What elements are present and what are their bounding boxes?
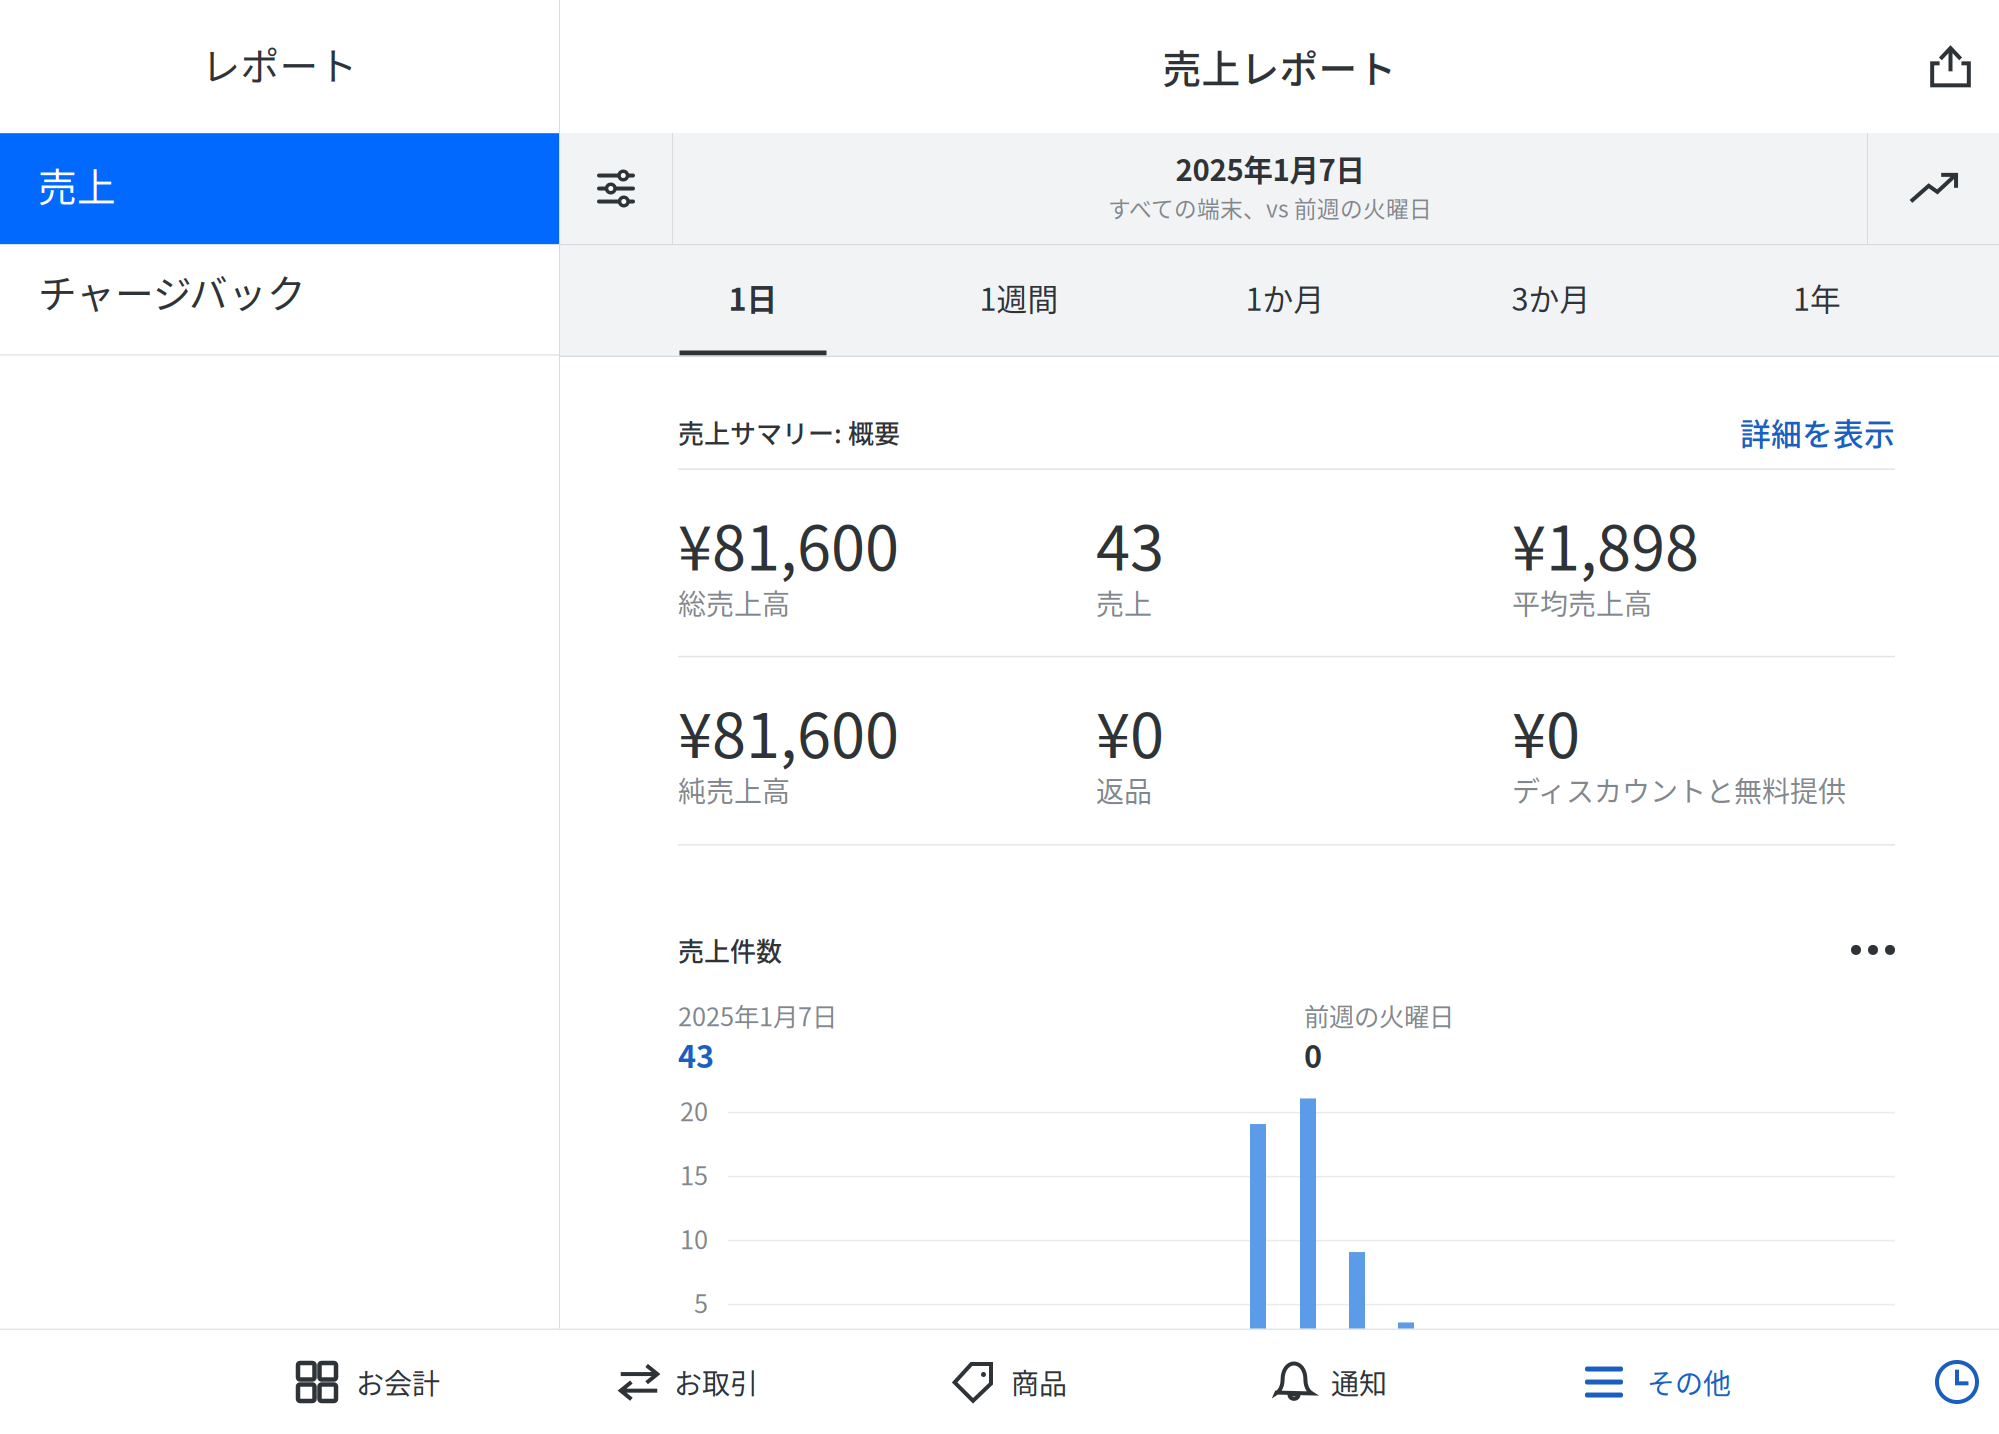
staticText: ¥0: [1096, 687, 1164, 776]
staticText: 平均売上高: [1512, 582, 1652, 623]
staticText: 3か月: [1511, 275, 1590, 319]
button[interactable]: その他: [1583, 1330, 1863, 1434]
staticText: 5: [694, 1284, 708, 1321]
staticText: 0: [1304, 1032, 1322, 1077]
staticText: 詳細を表示: [1740, 410, 1895, 454]
staticText: 15: [680, 1156, 708, 1193]
staticText: ディスカウントと無料提供: [1512, 770, 1846, 810]
staticText: 1週間: [979, 275, 1058, 319]
button[interactable]: フィルタ: [560, 133, 672, 244]
staticText: 43: [1096, 499, 1164, 588]
button[interactable]: 通知: [1273, 1330, 1583, 1434]
staticText: 売上サマリー: 概要: [678, 413, 900, 451]
button[interactable]: 商品: [952, 1330, 1273, 1434]
button[interactable]: その他のオプション: [1851, 943, 1895, 957]
button[interactable]: お会計: [296, 1330, 618, 1434]
staticText: 43: [678, 1032, 714, 1077]
button[interactable]: グラフを表示: [1868, 133, 1999, 244]
staticText: ¥0: [1512, 687, 1580, 776]
staticText: 商品: [1011, 1362, 1067, 1402]
staticText: 返品: [1096, 770, 1152, 810]
staticText: 前週の火曜日: [1304, 997, 1454, 1033]
staticText: 売上: [38, 157, 116, 213]
staticText: 10: [680, 1220, 708, 1257]
staticText: 売上: [1096, 582, 1152, 623]
staticText: レポート: [201, 36, 357, 92]
staticText: ¥81,600: [678, 687, 899, 776]
staticText: お会計: [356, 1362, 440, 1402]
staticText: 1日: [728, 275, 777, 319]
staticText: チャージバック: [38, 263, 306, 319]
staticText: お取引: [674, 1362, 758, 1402]
staticText: その他: [1647, 1362, 1731, 1402]
button[interactable]: お取引: [618, 1330, 952, 1434]
staticText: 2025年1月7日: [1175, 147, 1364, 189]
staticText: 20: [680, 1092, 708, 1129]
staticText: 1か月: [1245, 275, 1324, 319]
staticText: 総売上高: [678, 582, 790, 623]
button[interactable]: 共有: [1902, 0, 1999, 133]
staticText: 通知: [1331, 1362, 1387, 1402]
button[interactable]: 3か月: [1418, 245, 1684, 355]
staticText: 売上件数: [678, 931, 782, 969]
button[interactable]: 1日: [620, 245, 886, 355]
staticText: ¥81,600: [678, 499, 899, 588]
staticText: 2025年1月7日: [678, 997, 837, 1033]
button[interactable]: 1週間: [886, 245, 1152, 355]
button[interactable]: 1か月: [1152, 245, 1418, 355]
button[interactable]: チャージバック: [0, 244, 559, 354]
staticText: すべての端末、vs 前週の火曜日: [1108, 191, 1432, 224]
staticText: 売上レポート: [1162, 38, 1396, 94]
button[interactable]: 売上: [0, 133, 559, 244]
button[interactable]: 履歴: [1933, 1330, 1981, 1434]
staticText: ¥1,898: [1512, 499, 1699, 588]
staticText: 1年: [1793, 275, 1841, 319]
staticText: 純売上高: [678, 770, 790, 810]
button[interactable]: 1年: [1684, 245, 1950, 355]
button[interactable]: 詳細を表示: [1740, 410, 1895, 454]
